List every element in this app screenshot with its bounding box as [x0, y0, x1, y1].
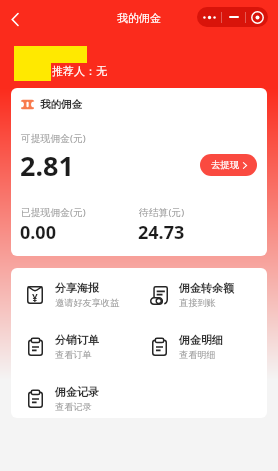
staticText: 查看明细 [179, 349, 216, 361]
staticText: 待结算(元) [139, 206, 185, 219]
staticText: 查看订单 [55, 349, 92, 361]
staticText: 我的佣金 [40, 98, 82, 111]
staticText: 24.73 [138, 220, 185, 245]
button[interactable]: More options [197, 7, 268, 27]
button[interactable]: ¥ [18, 272, 136, 318]
staticText: 2.81 [20, 147, 74, 184]
staticText: 邀请好友享收益 [55, 297, 120, 309]
staticText: 查看记录 [55, 401, 92, 413]
staticText: 已提现佣金(元) [21, 206, 86, 219]
button[interactable]: 佣金记录 [18, 376, 136, 418]
staticText: 分享海报 [55, 281, 99, 295]
staticText: 直接到账 [179, 297, 216, 309]
button[interactable]: 佣金转余额 [142, 272, 260, 318]
staticText: 佣金明细 [179, 333, 223, 347]
staticText: 分销订单 [55, 333, 99, 347]
staticText: 佣金转余额 [179, 281, 234, 295]
staticText: 佣金记录 [55, 385, 99, 399]
staticText: 0.00 [20, 220, 56, 245]
staticText: 推荐人：无 [52, 64, 107, 78]
staticText: 我的佣金 [117, 11, 161, 25]
staticText: 可提现佣金(元) [21, 132, 86, 145]
button[interactable]: 佣金明细 [142, 324, 260, 370]
staticText: 去提现 [211, 159, 240, 171]
button[interactable]: Back [3, 7, 27, 31]
button[interactable]: 去提现 [200, 154, 257, 176]
button[interactable]: 分销订单 [18, 324, 136, 370]
staticText: ¥ [32, 291, 38, 305]
